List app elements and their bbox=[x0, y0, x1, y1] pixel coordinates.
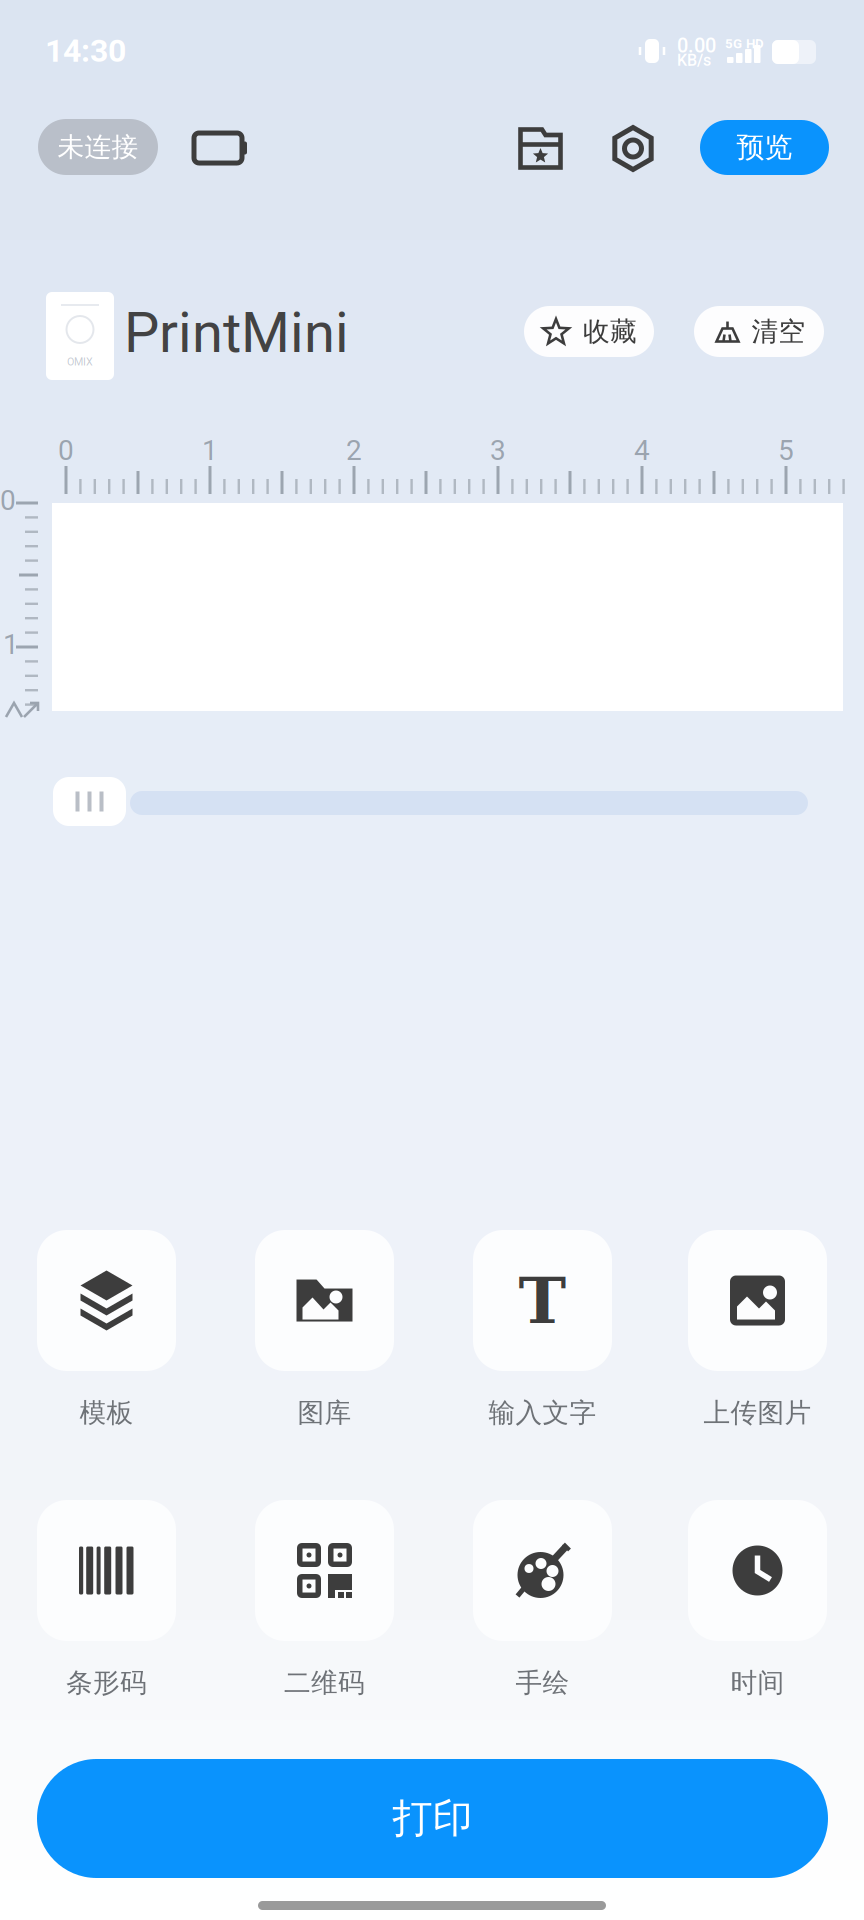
button[interactable]: 收藏 bbox=[524, 306, 654, 357]
button[interactable]: 条形码 bbox=[11, 1500, 201, 1716]
staticText: 手绘 bbox=[515, 1666, 569, 1700]
button[interactable]: 模板 bbox=[11, 1230, 201, 1446]
staticText: 0.00 bbox=[677, 34, 716, 57]
staticText: 图库 bbox=[297, 1396, 351, 1430]
button[interactable]: 图库 bbox=[229, 1230, 419, 1446]
staticText: 0 bbox=[58, 434, 74, 467]
staticText: 时间 bbox=[730, 1666, 784, 1700]
staticText: HD bbox=[746, 36, 764, 52]
button[interactable]: Device settings bbox=[610, 125, 656, 172]
button[interactable]: Resize canvas bbox=[53, 777, 126, 826]
staticText: OMIX bbox=[67, 355, 93, 368]
button[interactable]: Saved labels bbox=[518, 127, 563, 170]
staticText: 清空 bbox=[751, 315, 805, 348]
staticText: 模板 bbox=[79, 1396, 133, 1430]
staticText: 二维码 bbox=[284, 1666, 365, 1700]
button[interactable]: 二维码 bbox=[229, 1500, 419, 1716]
staticText: T bbox=[518, 1263, 566, 1338]
staticText: 收藏 bbox=[583, 315, 637, 348]
button[interactable]: Paper level bbox=[195, 133, 246, 163]
staticText: 未连接 bbox=[57, 130, 138, 164]
button[interactable]: T bbox=[447, 1230, 637, 1446]
staticText: 5 bbox=[778, 434, 794, 467]
staticText: 1 bbox=[202, 434, 218, 467]
staticText: 条形码 bbox=[66, 1666, 147, 1700]
button[interactable]: 手绘 bbox=[447, 1500, 637, 1716]
staticText: PrintMini bbox=[124, 300, 349, 366]
staticText: 3 bbox=[490, 434, 506, 467]
staticText: 预览 bbox=[736, 130, 792, 165]
staticText: 打印 bbox=[392, 1793, 472, 1844]
button[interactable]: 上传图片 bbox=[662, 1230, 852, 1446]
staticText: 0 bbox=[0, 484, 16, 517]
staticText: 14:30 bbox=[45, 32, 126, 69]
button[interactable]: 预览 bbox=[700, 120, 829, 175]
staticText: 2 bbox=[346, 434, 362, 467]
button[interactable]: 时间 bbox=[662, 1500, 852, 1716]
button[interactable]: 清空 bbox=[694, 306, 824, 357]
staticText: 上传图片 bbox=[703, 1396, 811, 1430]
staticText: 4 bbox=[634, 434, 650, 467]
button[interactable]: 未连接 bbox=[38, 119, 158, 175]
button[interactable]: 打印 bbox=[37, 1759, 828, 1878]
staticText: KB/s bbox=[677, 51, 711, 70]
staticText: 输入文字 bbox=[488, 1396, 596, 1430]
staticText: 5G bbox=[725, 36, 742, 52]
staticText: 1 bbox=[3, 628, 19, 661]
